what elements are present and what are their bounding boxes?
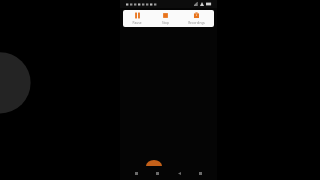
button[interactable]: Apps [132, 169, 141, 178]
staticText: Stop [162, 21, 169, 25]
button[interactable]: Stop [151, 10, 179, 27]
button[interactable]: Home [153, 169, 162, 178]
button[interactable]: Recordings [179, 10, 214, 27]
button[interactable]: Recording indicator [146, 160, 162, 166]
button[interactable]: Back [175, 169, 184, 178]
staticText: Recordings [188, 21, 205, 25]
staticText: Pause [132, 21, 142, 25]
button[interactable]: Pause [123, 10, 151, 27]
button[interactable]: Menu [196, 169, 205, 178]
